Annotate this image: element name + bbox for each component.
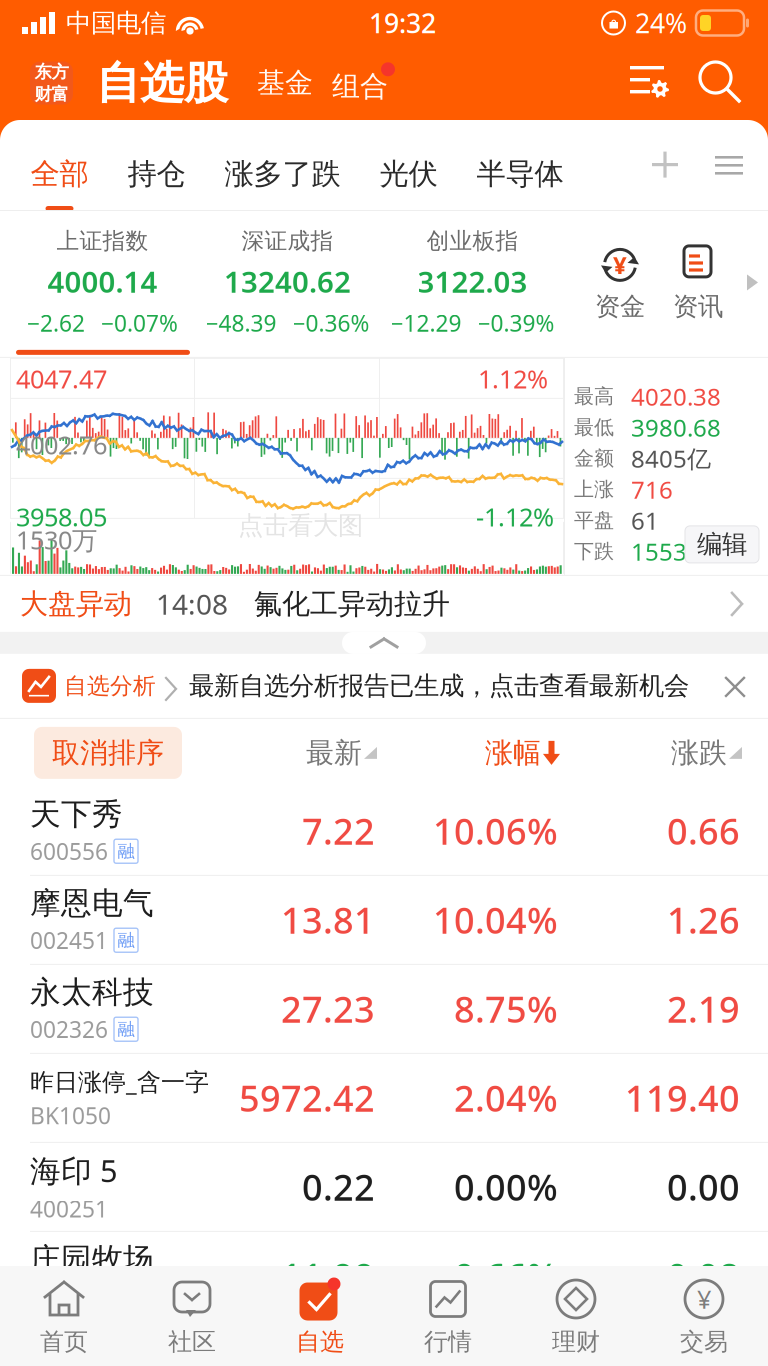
staticText: −12.29 bbox=[390, 308, 461, 338]
button[interactable]: 持仓 bbox=[108, 120, 205, 210]
staticText: 自选分析 bbox=[64, 672, 156, 700]
button[interactable]: 自选 bbox=[256, 1266, 384, 1366]
button[interactable]: 天下秀 bbox=[0, 787, 768, 876]
staticText: BK1050 bbox=[30, 1100, 111, 1130]
button[interactable]: 社区 bbox=[128, 1266, 256, 1366]
button[interactable]: 编辑 bbox=[685, 526, 759, 563]
staticText: 涨多了跌 bbox=[224, 156, 340, 192]
staticText: 5972.42 bbox=[239, 1074, 375, 1122]
button[interactable]: 半导体 bbox=[457, 120, 583, 210]
button[interactable]: 昨日涨停_含一字 bbox=[0, 1054, 768, 1143]
staticText: 002910 bbox=[30, 1281, 108, 1311]
staticText: 取消排序 bbox=[52, 736, 164, 770]
button[interactable]: 摩恩电气 bbox=[0, 876, 768, 965]
staticText: 资讯 bbox=[673, 291, 723, 322]
staticText: −48.39 bbox=[205, 308, 276, 338]
staticText: 24% bbox=[635, 5, 687, 41]
staticText: 002451 bbox=[30, 925, 108, 955]
staticText: 基金 bbox=[257, 66, 313, 100]
staticText: 庄园牧场 bbox=[30, 1240, 154, 1278]
staticText: ¥ bbox=[613, 249, 627, 281]
button[interactable]: 涨跌 bbox=[560, 736, 742, 770]
staticText: 金额 bbox=[574, 446, 614, 471]
staticText: 400251 bbox=[30, 1194, 108, 1224]
button[interactable]: 收起 bbox=[342, 632, 426, 654]
button[interactable]: 资讯 bbox=[659, 243, 737, 322]
staticText: 半导体 bbox=[476, 156, 563, 192]
staticText: 上证指数 bbox=[56, 227, 148, 255]
staticText: 13.81 bbox=[281, 896, 375, 944]
staticText: 最低 bbox=[574, 415, 614, 440]
button[interactable]: 海印 5 bbox=[0, 1143, 768, 1232]
button[interactable]: 永太科技 bbox=[0, 965, 768, 1054]
staticText: 行情 bbox=[424, 1327, 472, 1356]
button[interactable]: 关闭 bbox=[720, 672, 748, 700]
staticText: 61 bbox=[631, 504, 659, 536]
staticText: 600556 bbox=[30, 836, 108, 866]
staticText: 中国电信 bbox=[66, 7, 166, 38]
staticText: 0.08 bbox=[667, 1252, 740, 1300]
button[interactable]: 涨多了跌 bbox=[205, 120, 360, 210]
staticText: 点击看大图 bbox=[238, 510, 363, 541]
staticText: 昨日涨停_含一字 bbox=[30, 1065, 209, 1097]
button[interactable]: 全部 bbox=[11, 120, 108, 210]
button[interactable]: 指数分时图 bbox=[10, 358, 564, 575]
staticText: −0.07% bbox=[101, 308, 178, 338]
staticText: 深证成指 bbox=[241, 227, 333, 255]
button[interactable]: 大盘异动 bbox=[0, 576, 768, 632]
staticText: 0.22 bbox=[302, 1163, 375, 1211]
staticText: 全部 bbox=[30, 156, 88, 192]
staticText: 交易 bbox=[680, 1327, 728, 1356]
staticText: 1530万 bbox=[16, 523, 97, 556]
staticText: 10.04% bbox=[433, 896, 558, 944]
button[interactable]: 行情 bbox=[384, 1266, 512, 1366]
button[interactable]: 分组管理 bbox=[712, 148, 746, 182]
staticText: 14:08 bbox=[156, 585, 228, 622]
button[interactable]: 庄园牧场 bbox=[0, 1232, 768, 1320]
staticText: 0.00 bbox=[667, 1163, 740, 1211]
button[interactable]: 搜索 bbox=[700, 61, 744, 105]
button[interactable]: 取消排序 bbox=[34, 727, 182, 779]
button[interactable]: 涨幅 bbox=[377, 736, 560, 770]
staticText: 7.22 bbox=[302, 807, 375, 855]
staticText: 天下秀 bbox=[30, 795, 123, 833]
staticText: 摩恩电气 bbox=[30, 884, 154, 922]
staticText: 8.75% bbox=[454, 985, 558, 1033]
staticText: 融 bbox=[117, 930, 134, 951]
button[interactable]: ¥ bbox=[581, 243, 659, 322]
button[interactable]: 首页 bbox=[0, 1266, 128, 1366]
staticText: 海印 5 bbox=[30, 1150, 118, 1191]
staticText: 最新自选分析报告已生成，点击查看最新机会 bbox=[189, 670, 689, 701]
staticText: 10.06% bbox=[433, 807, 558, 855]
staticText: 0.66 bbox=[667, 807, 740, 855]
staticText: 4000.14 bbox=[47, 262, 157, 301]
staticText: 下跌 bbox=[574, 539, 614, 564]
staticText: 2.19 bbox=[667, 985, 740, 1033]
button[interactable]: ¥ bbox=[640, 1266, 768, 1366]
staticText: 0.00% bbox=[454, 1163, 558, 1211]
button[interactable]: 上证指数 bbox=[27, 227, 178, 338]
staticText: 最高 bbox=[574, 384, 614, 409]
button[interactable]: 自选分析 bbox=[22, 669, 177, 703]
button[interactable]: 最新 bbox=[225, 736, 377, 770]
button[interactable]: 深证成指 bbox=[205, 227, 369, 338]
button[interactable]: 光伏 bbox=[360, 120, 457, 210]
button[interactable]: 创业板指 bbox=[390, 227, 554, 338]
button[interactable]: 添加分组 bbox=[648, 148, 682, 182]
button[interactable]: 理财 bbox=[512, 1266, 640, 1366]
staticText: 1.26 bbox=[667, 896, 740, 944]
staticText: 首页 bbox=[40, 1327, 88, 1356]
staticText: 3122.03 bbox=[417, 262, 527, 301]
staticText: 融 bbox=[117, 1019, 134, 1040]
staticText: 0.66% bbox=[454, 1252, 558, 1300]
staticText: 4047.47 bbox=[16, 362, 107, 395]
staticText: −0.39% bbox=[477, 308, 554, 338]
staticText: 涨幅 bbox=[485, 736, 541, 770]
staticText: 13240.62 bbox=[224, 262, 351, 301]
staticText: 社区 bbox=[168, 1327, 216, 1356]
staticText: 永太科技 bbox=[30, 973, 154, 1011]
staticText: 1.12% bbox=[478, 362, 548, 395]
staticText: -1.12% bbox=[476, 500, 554, 533]
button[interactable]: 筛选 bbox=[628, 62, 670, 104]
staticText: 持仓 bbox=[127, 156, 185, 192]
